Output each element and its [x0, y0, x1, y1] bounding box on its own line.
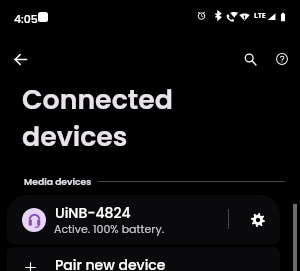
staticText: Connected devices [22, 81, 202, 156]
button[interactable]: Help [266, 43, 298, 75]
button[interactable]: Pair new device [7, 247, 280, 271]
button[interactable]: Device settings [235, 195, 280, 244]
button[interactable]: UiNB-4824 [7, 195, 280, 244]
staticText: LTE [254, 11, 266, 21]
staticText: UiNB-4824 [55, 203, 131, 223]
staticText: 4:05 [14, 11, 38, 26]
button[interactable]: Back [4, 43, 36, 75]
staticText: Media devices [24, 175, 92, 188]
staticText: Active. 100% battery. [54, 221, 164, 236]
button[interactable]: Search [234, 43, 266, 75]
staticText: Pair new device [55, 255, 166, 271]
